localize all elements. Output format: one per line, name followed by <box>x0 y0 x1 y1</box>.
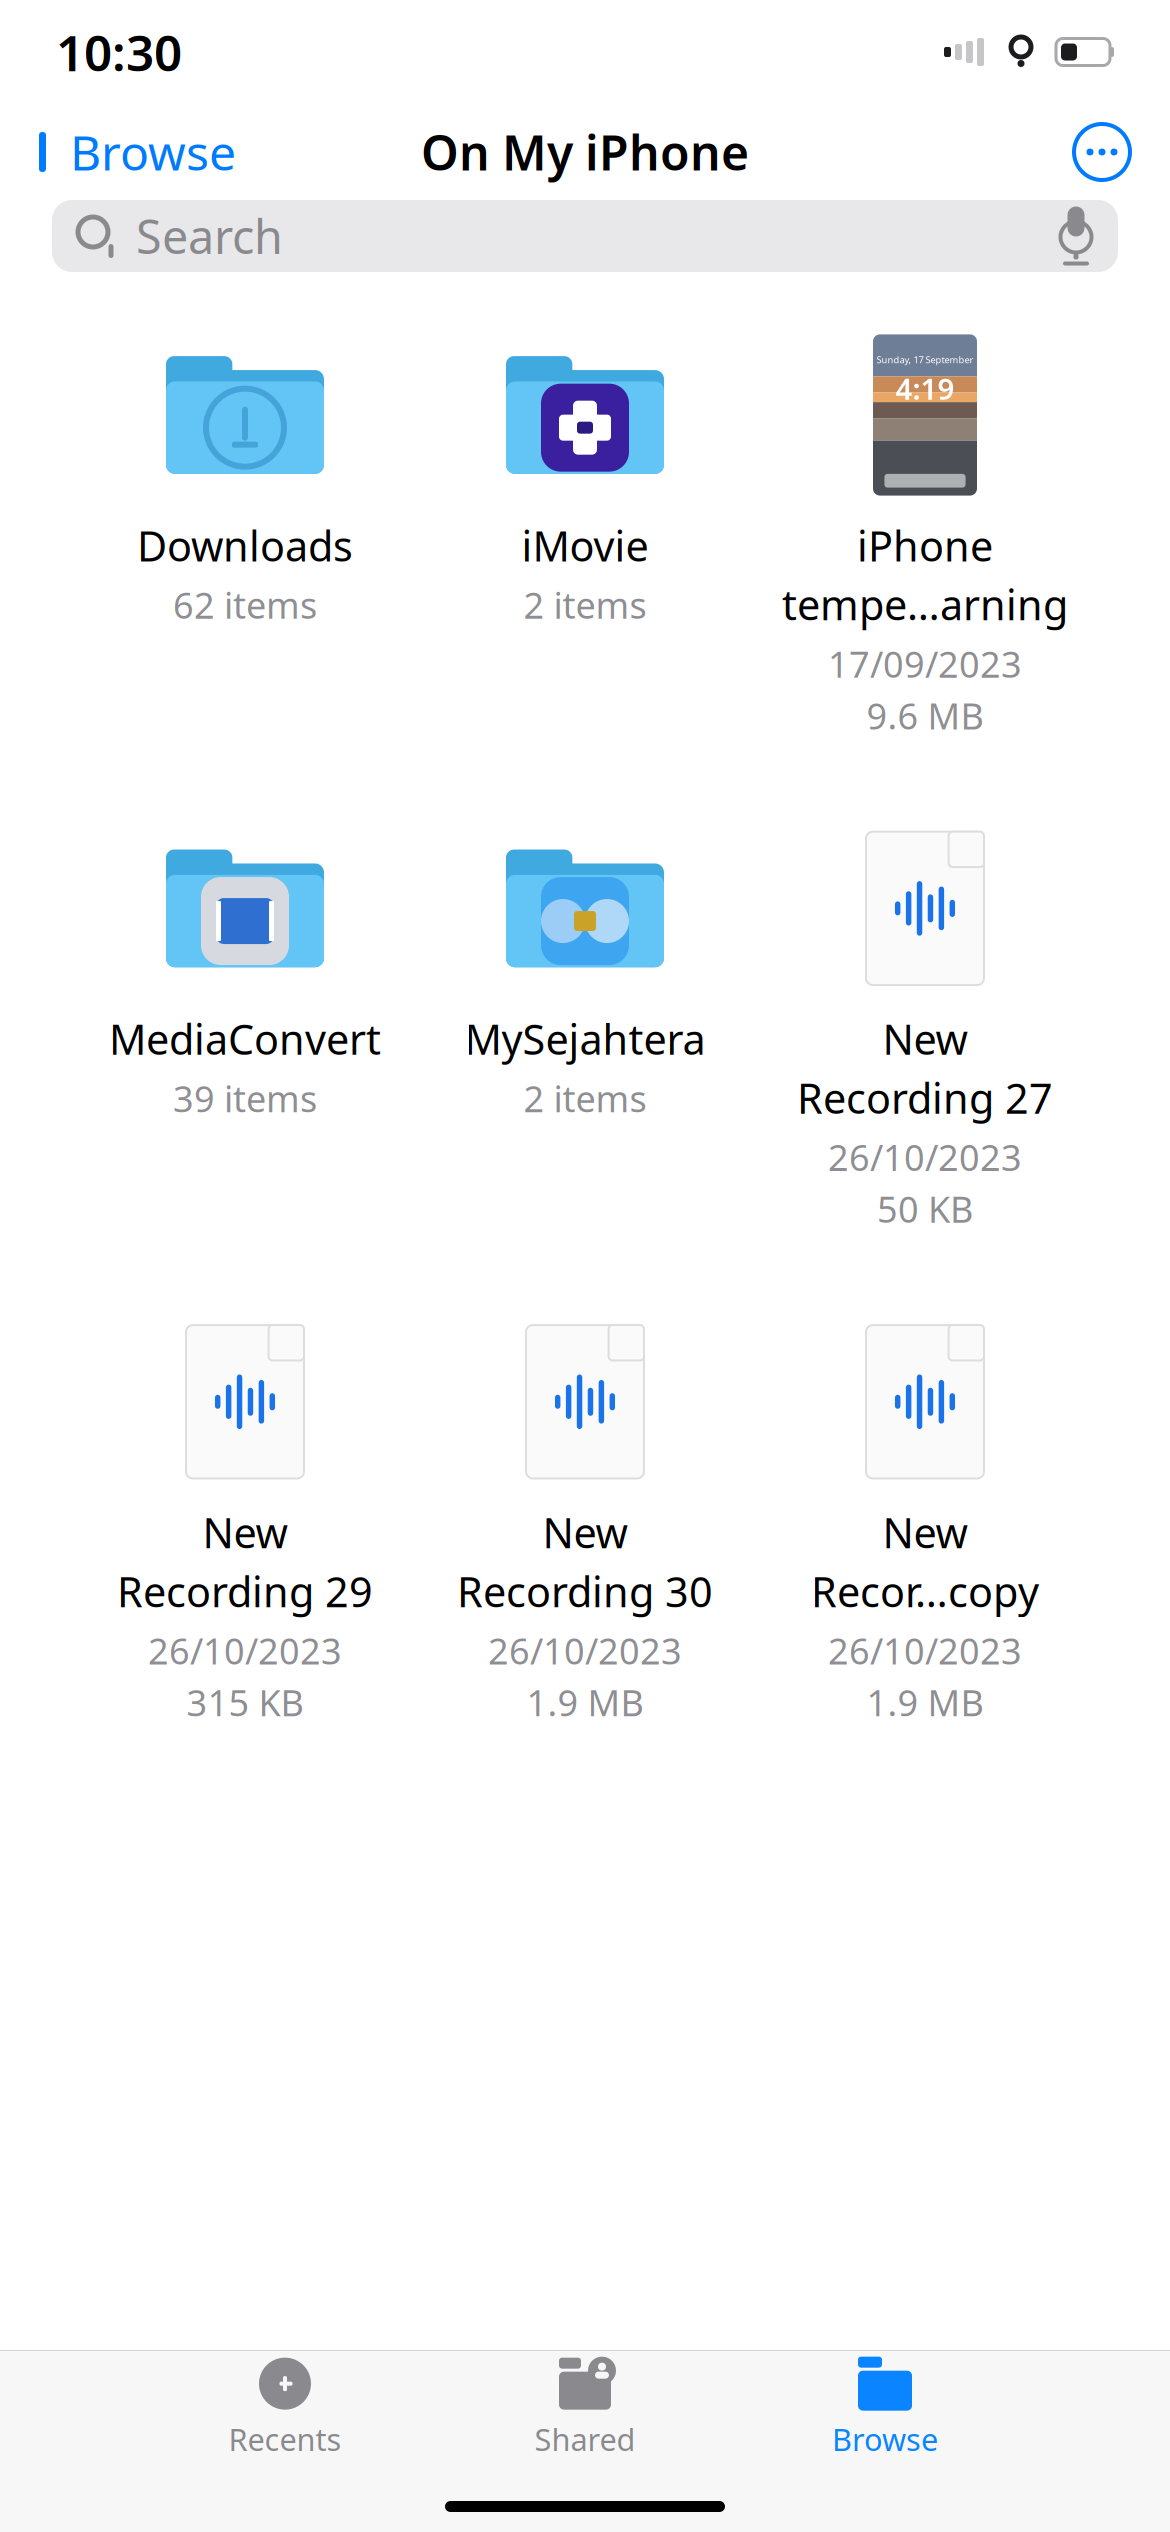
button[interactable]: Search <box>52 200 1118 272</box>
button[interactable]: Recents <box>135 2352 435 2462</box>
staticText: 4:19 <box>895 369 954 408</box>
staticText: 9.6 MB <box>866 692 983 739</box>
staticText: Browse <box>70 120 236 184</box>
button[interactable]: More options <box>1062 112 1142 192</box>
staticText: On My iPhone <box>421 120 749 184</box>
staticText: Browse <box>832 2419 938 2459</box>
staticText: MediaConvert <box>109 1011 381 1066</box>
staticText: Downloads <box>137 518 353 573</box>
staticText: 26/10/2023 <box>828 1133 1022 1181</box>
staticText: New <box>882 1011 967 1066</box>
staticText: 315 KB <box>186 1678 303 1726</box>
staticText: New <box>542 1505 627 1560</box>
staticText: 2 items <box>523 581 646 629</box>
button[interactable]: MySejahtera <box>415 819 755 1233</box>
staticText: iMovie <box>521 518 648 573</box>
button[interactable]: Browse <box>28 107 242 197</box>
staticText: 17/09/2023 <box>828 640 1022 688</box>
staticText: New <box>882 1505 967 1560</box>
staticText: 62 items <box>173 581 317 629</box>
staticText: 39 items <box>173 1074 317 1122</box>
button[interactable]: iMovie <box>415 326 755 739</box>
button[interactable]: New <box>75 1313 415 1726</box>
button[interactable]: MediaConvert <box>75 819 415 1233</box>
button[interactable]: Sunday, 17 September <box>755 326 1095 739</box>
staticText: 26/10/2023 <box>488 1627 682 1674</box>
staticText: Recording 27 <box>797 1070 1053 1125</box>
staticText: 10:30 <box>56 19 182 85</box>
staticText: 1.9 MB <box>526 1678 643 1726</box>
staticText: tempe…arning <box>782 577 1068 632</box>
staticText: Shared <box>534 2419 635 2459</box>
button[interactable]: Browse <box>735 2352 1035 2462</box>
button[interactable]: Shared <box>435 2352 735 2462</box>
staticText: 50 KB <box>877 1185 973 1233</box>
staticText: 1.9 MB <box>866 1678 983 1726</box>
button[interactable]: Downloads <box>75 326 415 739</box>
staticText: iPhone <box>857 518 993 573</box>
staticText: Search <box>136 205 283 267</box>
staticText: MySejahtera <box>464 1011 705 1066</box>
staticText: Recents <box>228 2419 341 2459</box>
staticText: 26/10/2023 <box>828 1627 1022 1674</box>
button[interactable]: New <box>415 1313 755 1726</box>
staticText: Recording 29 <box>117 1564 373 1619</box>
button[interactable]: New <box>755 819 1095 1233</box>
staticText: Recor…copy <box>811 1564 1039 1619</box>
staticText: Recording 30 <box>457 1564 713 1619</box>
staticText: New <box>202 1505 287 1560</box>
staticText: Sunday, 17 September <box>876 353 973 366</box>
button[interactable]: New <box>755 1313 1095 1726</box>
staticText: 2 items <box>523 1074 646 1122</box>
staticText: 26/10/2023 <box>148 1627 342 1674</box>
